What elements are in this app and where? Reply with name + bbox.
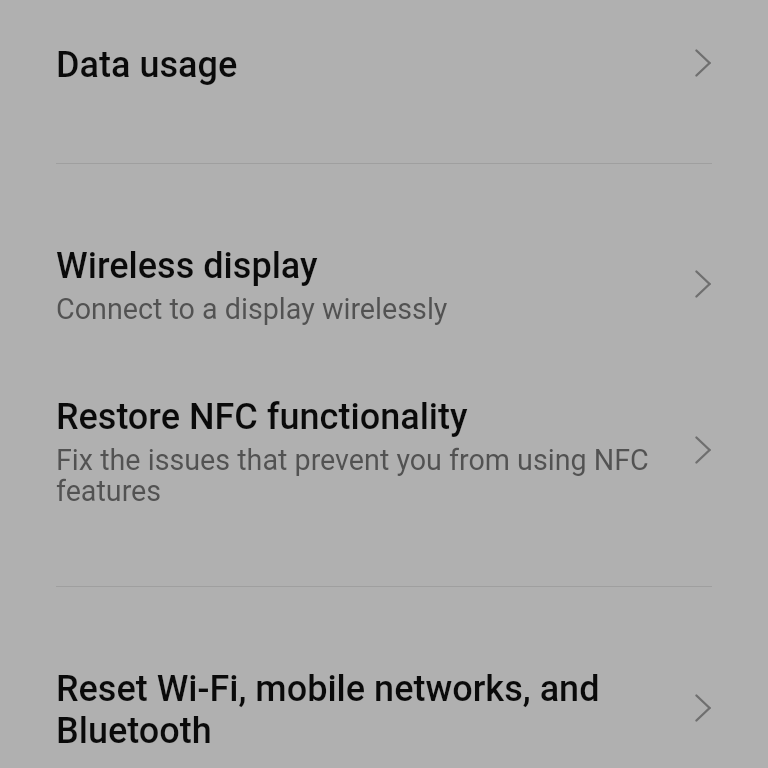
- staticText: Restore NFC functionality: [56, 396, 468, 438]
- staticText: Wireless display: [56, 245, 318, 287]
- button[interactable]: Wireless display: [0, 204, 768, 361]
- other: Wireless display: [686, 269, 720, 303]
- staticText: Connect to a display wirelessly: [56, 292, 448, 326]
- other: Reset Wi-Fi, mobile networks, and Blueto…: [686, 693, 720, 727]
- staticText: Reset Wi-Fi, mobile networks, and Blueto…: [56, 668, 670, 752]
- button[interactable]: Restore NFC functionality: [0, 361, 768, 547]
- staticText: Data usage: [56, 44, 238, 86]
- staticText: Fix the issues that prevent you from usi…: [56, 443, 670, 508]
- other: Restore NFC functionality: [686, 435, 720, 469]
- button[interactable]: Reset Wi-Fi, mobile networks, and Blueto…: [0, 628, 768, 768]
- button[interactable]: Data usage: [0, 0, 768, 124]
- other: Data usage: [686, 48, 720, 82]
